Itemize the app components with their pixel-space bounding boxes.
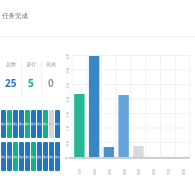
button[interactable]: 总数 [1, 58, 21, 98]
staticText: 任务完成 [2, 12, 28, 20]
staticText: 1.0 [64, 125, 69, 131]
button[interactable]: task 6 [31, 110, 36, 138]
staticText: 任务 [43, 122, 48, 127]
staticText: 任务 [25, 122, 30, 127]
button[interactable]: task 1 [1, 142, 6, 171]
button[interactable]: task 7 [37, 110, 42, 138]
button[interactable]: task 8 [43, 142, 48, 171]
staticText: 任务 [49, 122, 54, 127]
button[interactable]: task 9 [49, 142, 54, 171]
staticText: 5日 [136, 168, 141, 175]
button[interactable]: task 10 [55, 142, 60, 171]
staticText: 8日 [181, 168, 186, 175]
staticText: 1.5 [64, 111, 69, 117]
button[interactable]: task 1 [1, 110, 6, 138]
button[interactable]: task 4 [19, 142, 24, 171]
staticText: 25 [5, 76, 17, 90]
button[interactable]: task 3 [13, 142, 18, 171]
staticText: 0 [64, 156, 69, 159]
button[interactable]: task 4 [19, 110, 24, 138]
staticText: 任务 [7, 122, 12, 127]
staticText: 7日 [166, 168, 171, 175]
staticText: 任务 [19, 155, 24, 160]
button[interactable]: task 2 [7, 110, 12, 138]
staticText: 5 [28, 76, 34, 90]
button[interactable]: task 9 [49, 110, 54, 138]
staticText: 2.0 [64, 96, 69, 102]
staticText: 任务 [1, 155, 6, 160]
staticText: 0 [48, 76, 54, 90]
staticText: 任务 [37, 122, 42, 127]
staticText: 总数 [6, 61, 16, 67]
button[interactable]: 完成 [41, 58, 61, 98]
button[interactable]: 进行 [21, 58, 41, 98]
button[interactable]: task 8 [43, 110, 48, 138]
staticText: 任务 [13, 155, 18, 160]
staticText: 任务 [7, 155, 12, 160]
staticText: 4日 [122, 168, 127, 175]
staticText: 1日 [77, 168, 82, 175]
staticText: 任务 [49, 155, 54, 160]
staticText: 6日 [151, 168, 156, 175]
staticText: 任务 [43, 155, 48, 160]
staticText: 完成 [46, 61, 56, 67]
button[interactable]: task 3 [13, 110, 18, 138]
button[interactable]: task 7 [37, 142, 42, 171]
staticText: 任务 [37, 155, 42, 160]
staticText: 任务 [55, 122, 60, 127]
staticText: 0.5 [64, 140, 69, 146]
staticText: 任务 [25, 155, 30, 160]
staticText: 3.5 [64, 53, 69, 59]
staticText: 2.5 [64, 82, 69, 88]
staticText: 进行 [26, 61, 36, 67]
button[interactable]: task 10 [55, 110, 60, 138]
staticText: 任务 [13, 122, 18, 127]
staticText: 2日 [92, 168, 97, 175]
button[interactable]: task 6 [31, 142, 36, 171]
staticText: 任务 [31, 155, 36, 160]
staticText: 任务 [1, 122, 6, 127]
staticText: 任务 [55, 155, 60, 160]
staticText: 3日 [107, 168, 112, 175]
button[interactable]: task 2 [7, 142, 12, 171]
staticText: 3.0 [64, 67, 69, 73]
button[interactable]: task 5 [25, 142, 30, 171]
staticText: 任务 [31, 122, 36, 127]
staticText: 任务 [19, 122, 24, 127]
button[interactable]: task 5 [25, 110, 30, 138]
